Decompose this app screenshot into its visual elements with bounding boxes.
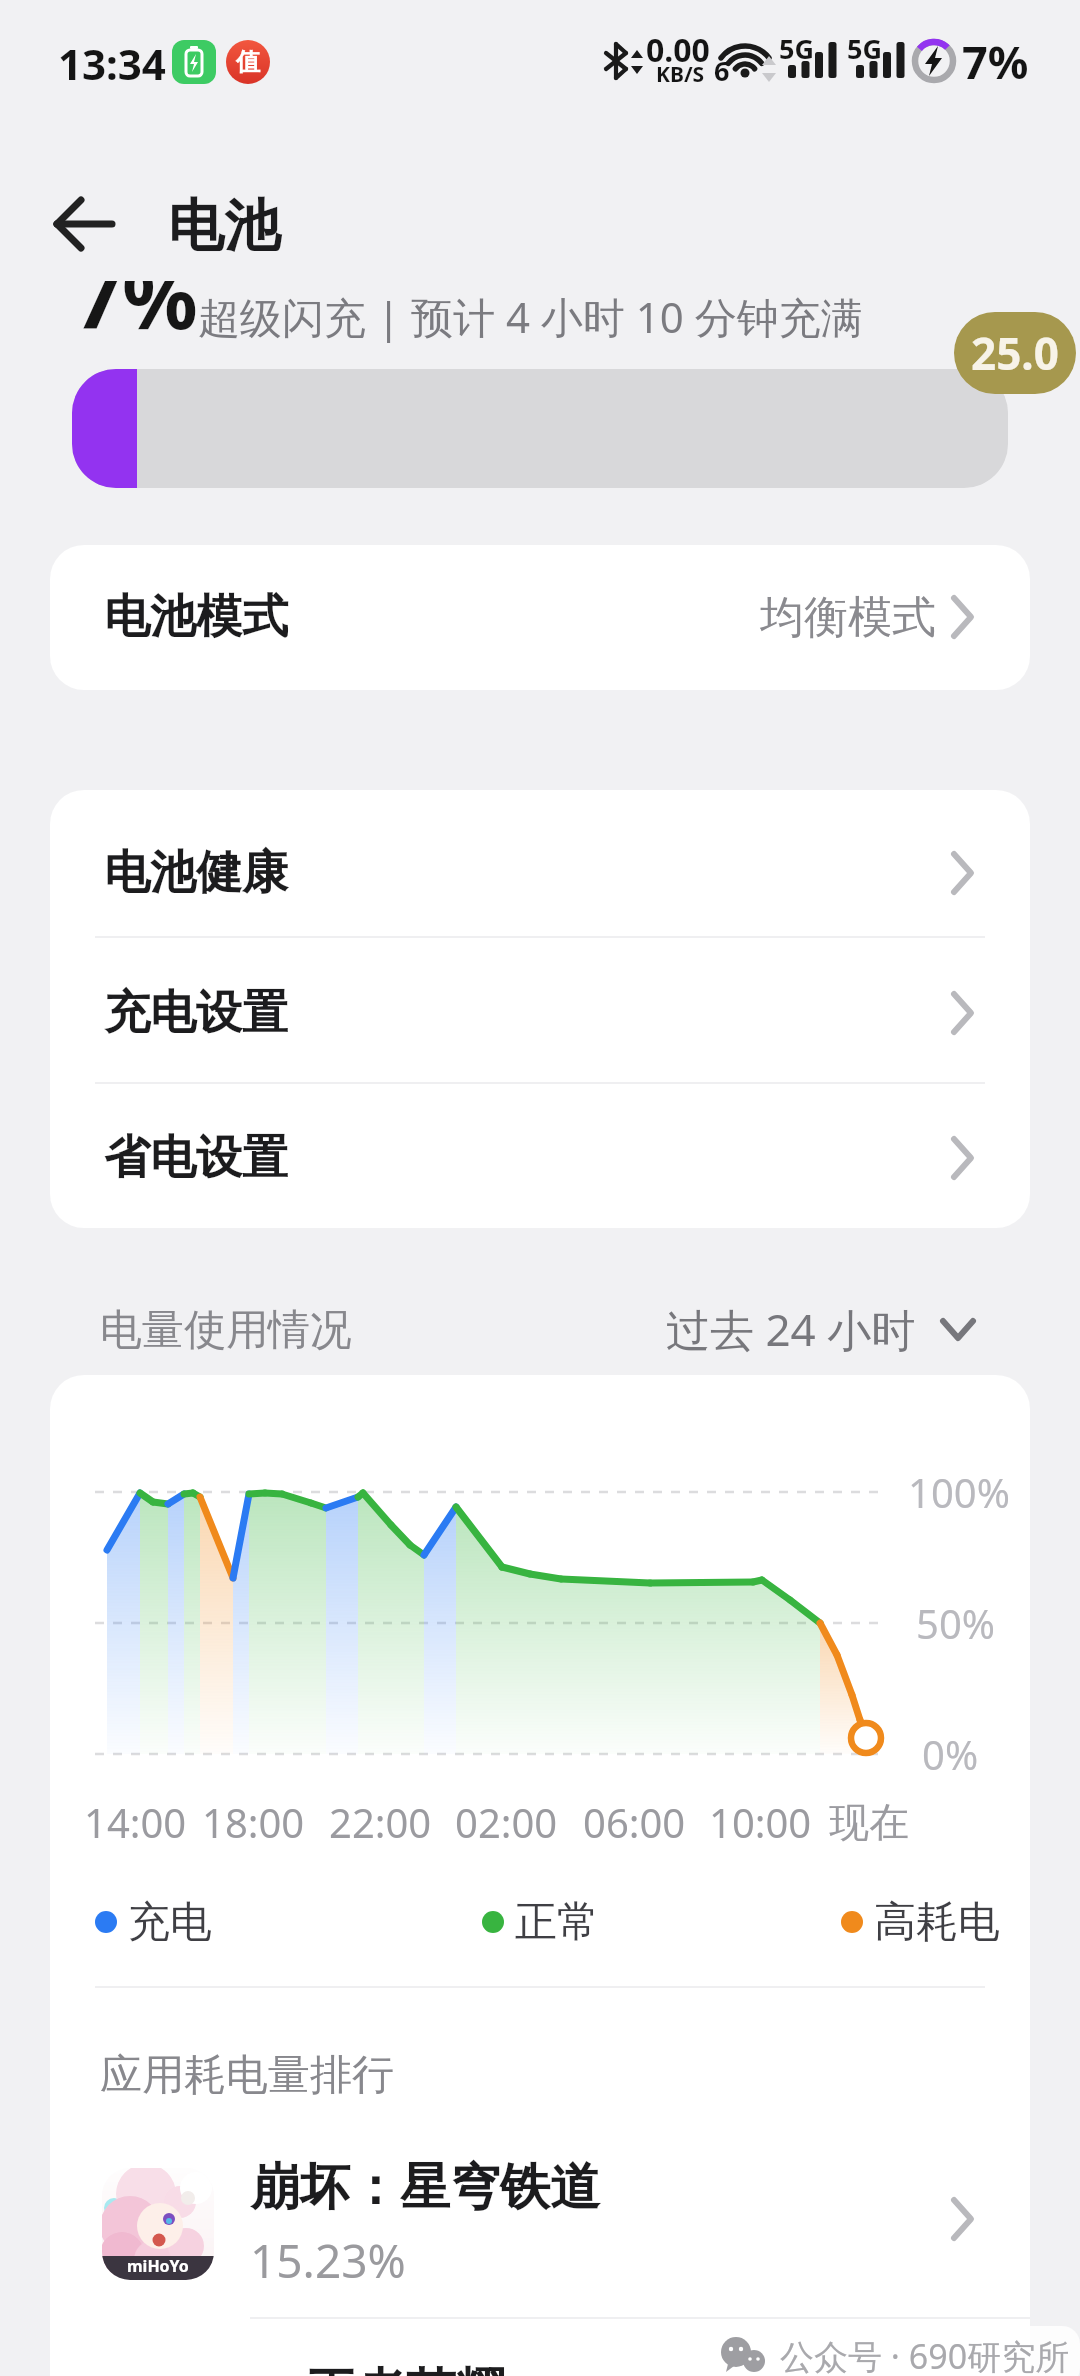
staticText: 超级闪充 | 预计 4 小时 10 分钟充满 bbox=[198, 288, 863, 345]
staticText: 02:00 bbox=[455, 1795, 558, 1849]
staticText: 13:34 bbox=[58, 35, 166, 92]
button[interactable] bbox=[52, 196, 116, 252]
staticText: 7% bbox=[74, 239, 198, 353]
staticText: 0% bbox=[922, 1727, 979, 1781]
staticText: 应用耗电量排行 bbox=[100, 2049, 394, 2102]
button[interactable] bbox=[50, 1083, 1030, 1228]
button[interactable] bbox=[70, 2140, 1010, 2310]
button[interactable] bbox=[940, 1318, 976, 1342]
staticText: 6 bbox=[714, 52, 730, 89]
button[interactable] bbox=[50, 545, 1030, 690]
staticText: 0.00 bbox=[646, 28, 710, 72]
button[interactable] bbox=[50, 937, 1030, 1083]
staticText: 5G bbox=[847, 30, 882, 67]
staticText: 22:00 bbox=[329, 1795, 432, 1849]
staticText: 电池健康 bbox=[104, 844, 288, 902]
staticText: 电池模式 bbox=[104, 588, 288, 646]
staticText: 公众号 · 690研究所 bbox=[780, 2333, 1070, 2376]
staticText: miHoYo bbox=[127, 2255, 189, 2277]
staticText: 50% bbox=[916, 1596, 995, 1650]
staticText: 电池 bbox=[168, 191, 280, 262]
staticText: 100% bbox=[908, 1465, 1010, 1519]
staticText: 7% bbox=[962, 31, 1029, 92]
staticText: 电量使用情况 bbox=[100, 1304, 352, 1357]
staticText: 充电设置 bbox=[104, 984, 288, 1042]
staticText: 18:00 bbox=[202, 1795, 305, 1849]
staticText: 15.23% bbox=[250, 2229, 406, 2292]
staticText: 5G bbox=[779, 30, 814, 67]
staticText: 高耗电 bbox=[874, 1896, 1000, 1949]
staticText: 25.0 bbox=[971, 323, 1059, 383]
staticText: 均衡模式 bbox=[760, 590, 936, 645]
staticText: KB/S bbox=[656, 60, 705, 89]
staticText: 14:00 bbox=[84, 1795, 187, 1849]
staticText: 过去 24 小时 bbox=[666, 1299, 916, 1359]
staticText: 10:00 bbox=[709, 1795, 812, 1849]
staticText: 省电设置 bbox=[104, 1129, 288, 1187]
staticText: 06:00 bbox=[583, 1795, 686, 1849]
staticText: 值 bbox=[236, 47, 260, 77]
button[interactable] bbox=[50, 790, 1030, 937]
staticText: 正常 bbox=[515, 1896, 599, 1949]
staticText: 现在 bbox=[829, 1797, 909, 1847]
staticText: 崩坏：星穹铁道 bbox=[250, 2156, 600, 2219]
staticText: 充电 bbox=[128, 1896, 212, 1949]
staticText: 王者荣耀 bbox=[306, 2361, 506, 2376]
